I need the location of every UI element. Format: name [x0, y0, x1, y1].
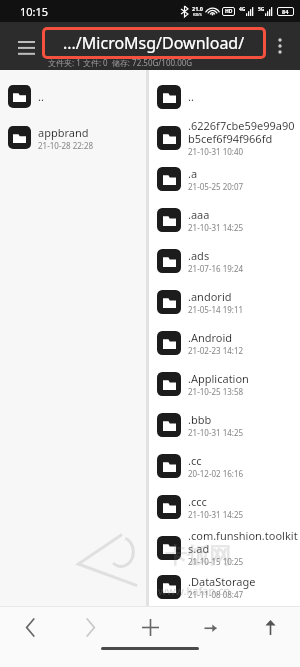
staticText: 21-05-25 20:07 — [188, 181, 244, 192]
staticText: .ccc — [188, 494, 207, 509]
button[interactable]: .ccc — [149, 486, 300, 527]
staticText: .6226f7cbe59e99a90b5cef6f94f966fd — [188, 118, 300, 146]
button[interactable]: .ads — [149, 240, 300, 281]
staticText: .../MicroMsg/Download/ — [63, 32, 245, 54]
button[interactable]: .bbb — [149, 404, 300, 445]
staticText: 21-11-08 08:47 — [188, 589, 244, 600]
staticText: 21-10-31 10:40 — [188, 146, 244, 157]
button[interactable]: More options — [264, 30, 296, 62]
staticText: 21-05-14 19:11 — [188, 304, 244, 315]
button[interactable]: .DataStorage — [149, 568, 300, 606]
staticText: 21-10-28 22:28 — [38, 140, 94, 151]
button[interactable]: .cc — [149, 445, 300, 486]
staticText: appbrand — [38, 125, 89, 140]
staticText: 文件夹: 1 文件: 0 储存: 72.50G/100.00G — [48, 57, 193, 68]
button[interactable]: Add — [120, 607, 180, 647]
button[interactable]: Up — [240, 607, 300, 647]
staticText: .andorid — [188, 289, 232, 304]
button[interactable]: .. — [0, 76, 146, 117]
button[interactable]: appbrand — [0, 117, 146, 158]
button[interactable]: .Application — [149, 363, 300, 404]
button[interactable]: .andorid — [149, 281, 300, 322]
staticText: KB/S — [193, 12, 202, 17]
staticText: HD — [225, 8, 233, 15]
staticText: 21.0 — [192, 5, 203, 12]
staticText: .. — [38, 89, 44, 104]
staticText: 21-02-23 14:12 — [188, 345, 244, 356]
button[interactable]: .aaa — [149, 199, 300, 240]
staticText: .DataStorage — [188, 574, 256, 589]
staticText: .aaa — [188, 207, 210, 222]
staticText: 21-10-31 14:25 — [188, 427, 244, 438]
button[interactable]: Back — [0, 607, 60, 647]
staticText: 84 — [282, 8, 289, 15]
staticText: 4G — [239, 6, 246, 13]
button[interactable]: .Android — [149, 322, 300, 363]
button[interactable]: .a — [149, 158, 300, 199]
staticText: 卡饭网 — [165, 542, 231, 570]
button[interactable]: .6226f7cbe59e99a90b5cef6f94f966fd — [149, 117, 300, 158]
staticText: .Application — [188, 371, 249, 386]
staticText: .com.funshion.toolkits.ad — [188, 528, 300, 556]
staticText: .a — [188, 166, 198, 181]
button[interactable]: .../MicroMsg/Download/ — [42, 27, 266, 59]
button[interactable]: Navigate — [180, 607, 240, 647]
staticText: 10:15 — [20, 4, 49, 19]
button[interactable]: .. — [149, 76, 300, 117]
staticText: 5G — [258, 6, 265, 13]
button[interactable]: .com.funshion.toolkits.ad — [149, 527, 300, 568]
staticText: www.kafan.cn — [158, 583, 231, 598]
staticText: .ads — [188, 248, 210, 263]
staticText: .cc — [188, 453, 202, 468]
button[interactable]: Menu — [8, 28, 44, 64]
staticText: 21-07-16 19:24 — [188, 263, 244, 274]
staticText: 21-10-31 14:25 — [188, 222, 244, 233]
button[interactable]: Forward — [60, 607, 120, 647]
staticText: 21-10-25 13:58 — [188, 386, 244, 397]
staticText: 21-10-15 10:25 — [188, 556, 244, 567]
staticText: .. — [188, 89, 194, 104]
staticText: 21-10-31 14:25 — [188, 509, 244, 520]
staticText: 20-12-02 16:16 — [188, 468, 244, 479]
staticText: .Android — [188, 330, 233, 345]
staticText: .bbb — [188, 412, 212, 427]
